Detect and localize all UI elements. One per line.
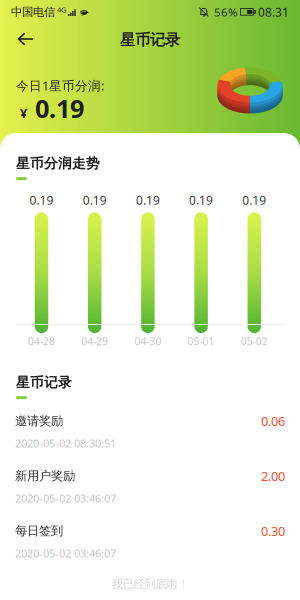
staticText: 今日1星币分润: <box>16 77 104 94</box>
staticText: 0.06 <box>261 412 285 430</box>
staticText: 05-02 <box>241 334 268 348</box>
staticText: 04-29 <box>81 334 108 348</box>
staticText: 4G <box>57 4 66 15</box>
staticText: 2020-05-02 08:30:51 <box>15 436 116 451</box>
staticText: 0.19 <box>83 192 107 208</box>
button[interactable]: 每日签到 <box>0 514 300 569</box>
staticText: 邀请奖励 <box>15 413 63 429</box>
staticText: 08:31 <box>258 4 289 20</box>
staticText: 04-28 <box>28 334 55 348</box>
staticText: 2020-05-02 03:46:07 <box>15 491 116 506</box>
staticText: 星币记录 <box>120 30 180 50</box>
staticText: ¥ <box>20 104 27 122</box>
button[interactable]: 新用户奖励 <box>0 459 300 514</box>
staticText: 每日签到 <box>15 523 63 539</box>
staticText: 0.30 <box>261 522 285 540</box>
staticText: 56% <box>214 4 238 20</box>
staticText: 星币记录 <box>16 374 72 391</box>
button[interactable]: 邀请奖励 <box>0 404 300 459</box>
staticText: 0.19 <box>136 192 160 208</box>
staticText: 星币分润走势 <box>16 155 100 172</box>
staticText: 05-01 <box>188 334 215 348</box>
staticText: 0.19 <box>29 192 53 208</box>
staticText: 0.19 <box>35 91 84 125</box>
staticText: 0.19 <box>242 192 266 208</box>
staticText: 2.00 <box>261 467 285 485</box>
staticText: 新用户奖励 <box>15 468 75 484</box>
staticText: 我已经到底啦！ <box>111 577 188 591</box>
button[interactable]: Back <box>6 24 46 54</box>
staticText: 中国电信 <box>11 5 55 19</box>
staticText: 2020-05-02 03:46:07 <box>15 546 116 561</box>
staticText: 04-30 <box>134 334 161 348</box>
staticText: 0.19 <box>189 192 213 208</box>
